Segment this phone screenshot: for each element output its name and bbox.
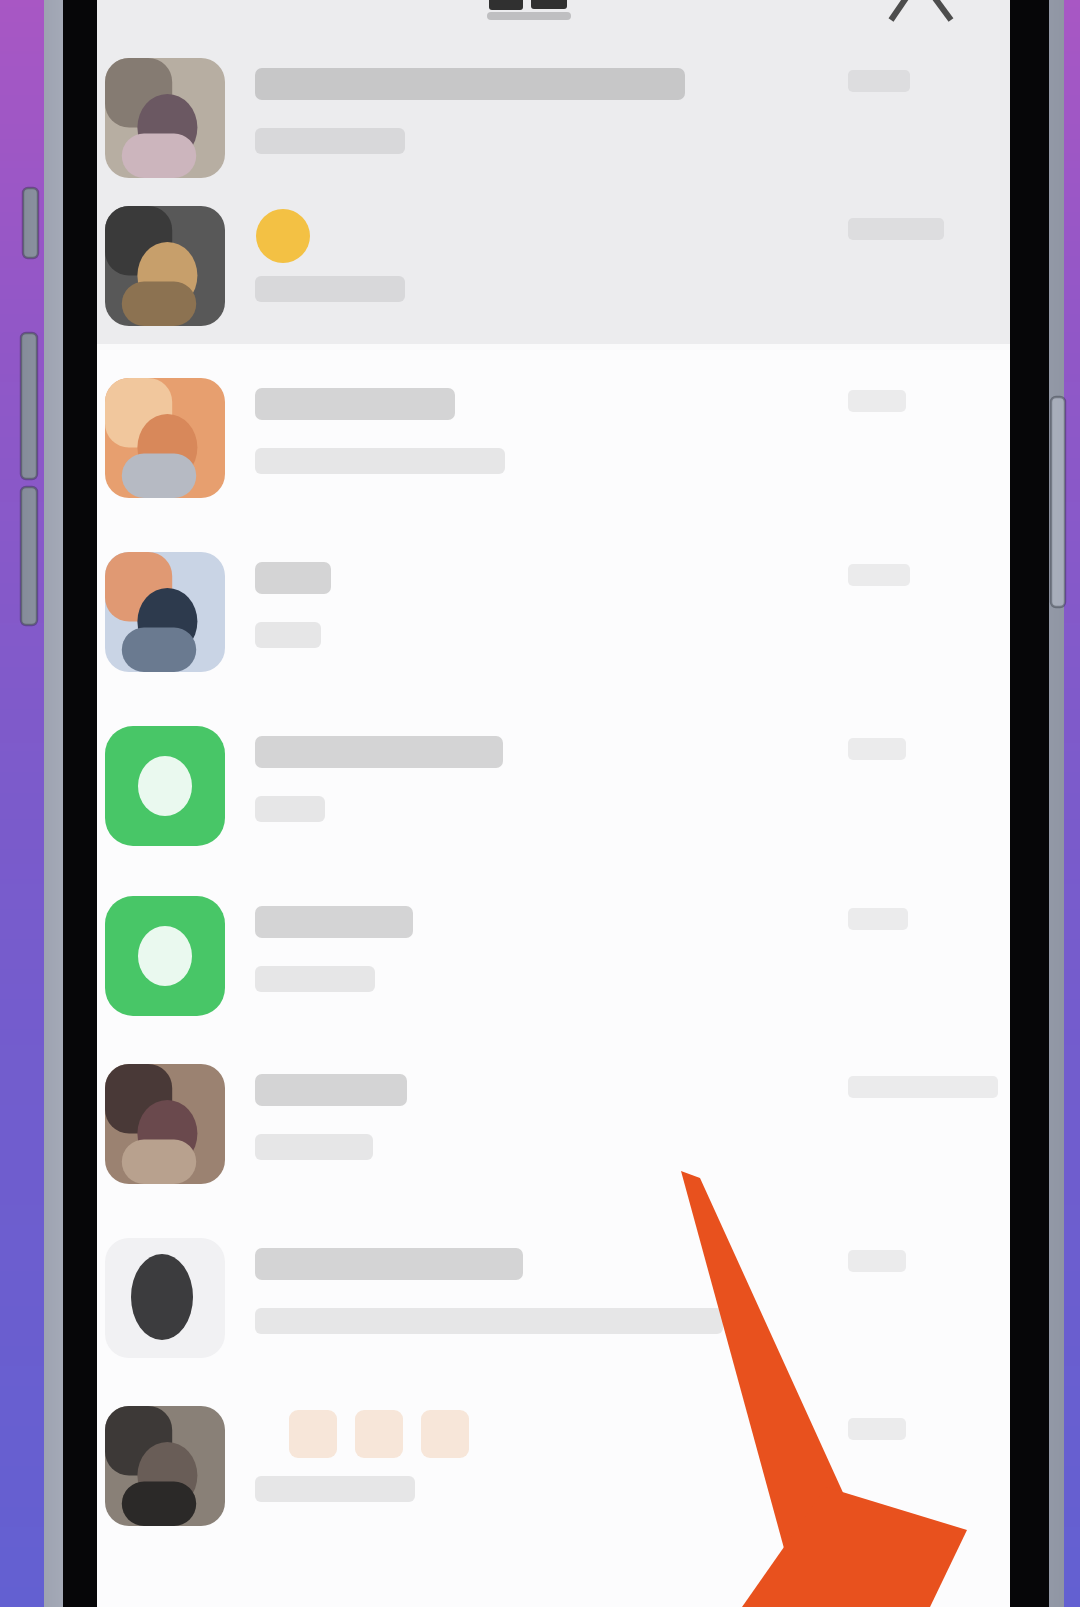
button[interactable] <box>97 42 1010 208</box>
button[interactable] <box>97 0 1010 34</box>
button[interactable] <box>97 710 1010 876</box>
button[interactable] <box>97 880 1010 1046</box>
button[interactable] <box>97 1222 1010 1388</box>
button[interactable] <box>97 1048 1010 1214</box>
button[interactable] <box>97 362 1010 528</box>
button[interactable] <box>97 1390 1010 1556</box>
button[interactable] <box>97 536 1010 702</box>
button[interactable] <box>97 190 1010 356</box>
button[interactable]: Add <box>867 0 957 30</box>
